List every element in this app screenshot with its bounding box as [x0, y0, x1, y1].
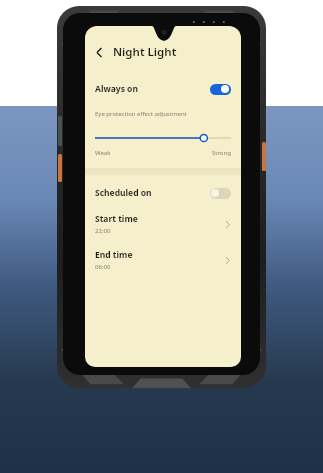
- staticText: Night Light: [113, 44, 177, 60]
- staticText: 06:00: [95, 263, 111, 271]
- button[interactable]: Back: [89, 42, 109, 62]
- button[interactable]: Start time: [85, 212, 241, 236]
- staticText: Strong: [212, 149, 231, 157]
- staticText: Start time: [95, 213, 138, 225]
- staticText: Always on: [95, 83, 210, 95]
- staticText: End time: [95, 249, 133, 261]
- staticText: 22:00: [95, 227, 111, 235]
- button[interactable]: Always on: [85, 76, 241, 102]
- button[interactable]: Always on toggle: [210, 84, 231, 95]
- button[interactable]: Brightness slider: [85, 131, 241, 145]
- staticText: Weak: [95, 149, 111, 157]
- button[interactable]: Scheduled on toggle: [210, 188, 231, 199]
- button[interactable]: Scheduled on: [85, 181, 241, 205]
- staticText: Scheduled on: [95, 187, 210, 199]
- button[interactable]: End time: [85, 248, 241, 272]
- staticText: Eye protection effect adjustment: [95, 110, 187, 118]
